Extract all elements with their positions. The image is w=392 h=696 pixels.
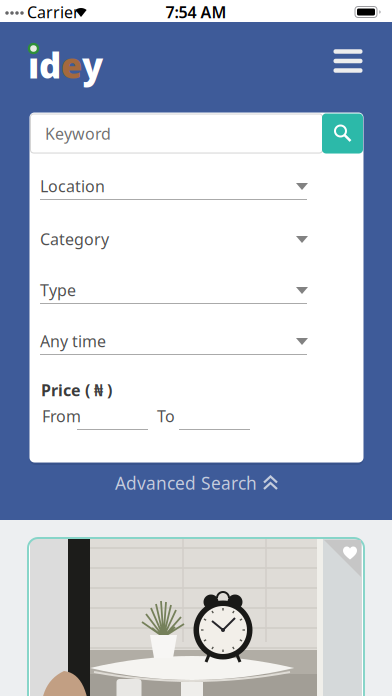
button[interactable] [343, 546, 357, 559]
staticText: d [39, 42, 61, 88]
button[interactable] [328, 44, 368, 78]
staticText: 7:54 AM [165, 1, 226, 23]
staticText: y [82, 42, 103, 88]
staticText: Carrier [27, 1, 80, 23]
button[interactable] [30, 114, 322, 153]
staticText: Any time [40, 330, 106, 352]
staticText: Price ( ₦ ) [41, 379, 112, 401]
staticText: Category [40, 228, 109, 250]
staticText: Type [40, 279, 76, 301]
staticText: e [61, 42, 82, 88]
button[interactable] [322, 113, 363, 153]
staticText: Advanced Search [115, 471, 257, 494]
button[interactable] [40, 224, 307, 254]
button[interactable]: Advanced Search [91, 468, 301, 498]
button[interactable] [40, 171, 307, 201]
staticText: From [42, 405, 81, 427]
button[interactable] [28, 538, 364, 696]
staticText: To [157, 405, 175, 427]
staticText: i [28, 42, 39, 88]
button[interactable] [40, 275, 307, 305]
staticText: Keyword [45, 123, 111, 144]
staticText: Location [40, 175, 105, 197]
button[interactable] [40, 326, 307, 356]
